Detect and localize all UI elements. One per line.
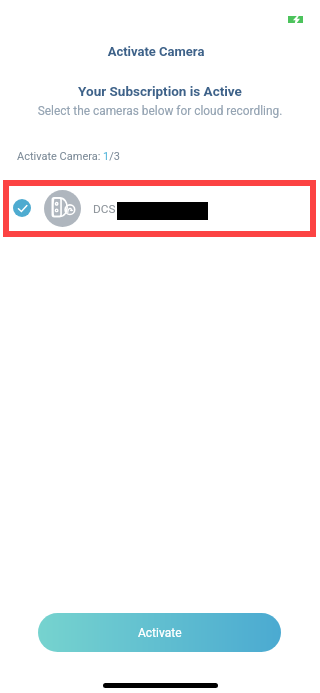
staticText: Your Subscription is Active [0,83,320,99]
button[interactable]: DCS [3,180,316,237]
button[interactable]: Activate [38,613,281,652]
staticText: DCS [93,202,116,216]
staticText: Select the cameras below for cloud recor… [0,104,320,118]
staticText: Activate [138,626,182,640]
other: Battery charging [288,16,303,23]
staticText: Activate Camera [0,44,316,59]
staticText: Activate Camera: 1/3 [17,150,121,163]
